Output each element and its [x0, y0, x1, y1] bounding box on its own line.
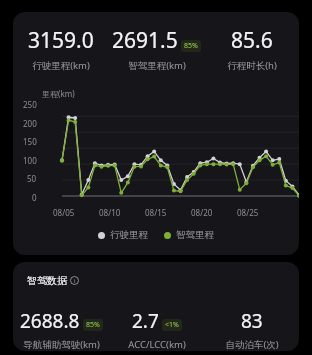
- staticText: 250: [23, 99, 37, 110]
- staticText: 0: [32, 192, 37, 203]
- staticText: 行驶里程(km): [32, 59, 90, 72]
- staticText: <1%: [165, 320, 179, 330]
- staticText: 行程时长(h): [227, 59, 277, 72]
- staticText: 200: [23, 118, 37, 129]
- staticText: 100: [23, 155, 37, 166]
- staticText: 83: [241, 308, 263, 334]
- staticText: 85%: [86, 320, 100, 330]
- staticText: 智驾数据: [27, 274, 67, 287]
- staticText: 50: [27, 173, 37, 184]
- staticText: 智驾里程(km): [128, 59, 186, 72]
- staticText: 08/15: [145, 207, 167, 218]
- button[interactable]: 智驾里程: [164, 229, 214, 241]
- staticText: 08/10: [99, 207, 121, 218]
- staticText: 85.6: [231, 26, 273, 55]
- button[interactable]: 2691.5: [109, 26, 204, 72]
- staticText: 2.7: [132, 308, 159, 334]
- button[interactable]: 2688.8: [13, 308, 109, 351]
- button[interactable]: 2.7: [109, 308, 204, 351]
- staticText: 08/25: [237, 207, 259, 218]
- button[interactable]: 85.6: [204, 26, 299, 72]
- staticText: 导航辅助驾驶(km): [23, 338, 100, 351]
- staticText: 智驾里程: [176, 229, 214, 241]
- staticText: 2688.8: [20, 308, 80, 334]
- staticText: ACC/LCC(km): [128, 338, 186, 351]
- staticText: 自动泊车(次): [225, 338, 279, 351]
- other: Info: [70, 276, 79, 285]
- staticText: 里程(km): [42, 88, 75, 99]
- staticText: 行驶里程: [110, 229, 148, 241]
- staticText: 3159.0: [28, 26, 94, 55]
- button[interactable]: 83: [204, 308, 299, 351]
- staticText: 08/20: [191, 207, 213, 218]
- staticText: i: [74, 277, 76, 285]
- staticText: 2691.5: [112, 26, 178, 55]
- button[interactable]: 智驾数据: [27, 274, 79, 287]
- button[interactable]: 3159.0: [13, 26, 109, 72]
- staticText: 150: [23, 136, 37, 147]
- staticText: 08/05: [53, 207, 75, 218]
- button[interactable]: 行驶里程: [98, 229, 148, 241]
- staticText: 85%: [184, 41, 198, 51]
